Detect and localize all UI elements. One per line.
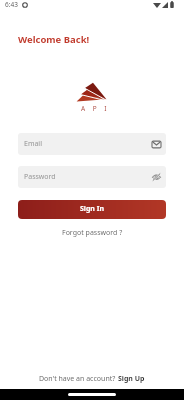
- button[interactable]: Password: [18, 166, 166, 188]
- other: Email: [152, 140, 161, 149]
- button[interactable]: Sign In: [18, 200, 166, 219]
- staticText: A P I: [81, 104, 108, 113]
- staticText: Sign In: [80, 204, 105, 214]
- button[interactable]: Sign Up: [118, 374, 145, 384]
- staticText: 6:43: [5, 0, 18, 9]
- staticText: Welcome Back!: [18, 33, 90, 46]
- other: Show password: [152, 173, 161, 181]
- staticText: Password: [24, 172, 56, 182]
- staticText: Don't have an account?: [39, 374, 118, 384]
- button[interactable]: Forgot password ?: [58, 226, 127, 240]
- button[interactable]: Email: [18, 133, 166, 155]
- staticText: Email: [24, 139, 42, 149]
